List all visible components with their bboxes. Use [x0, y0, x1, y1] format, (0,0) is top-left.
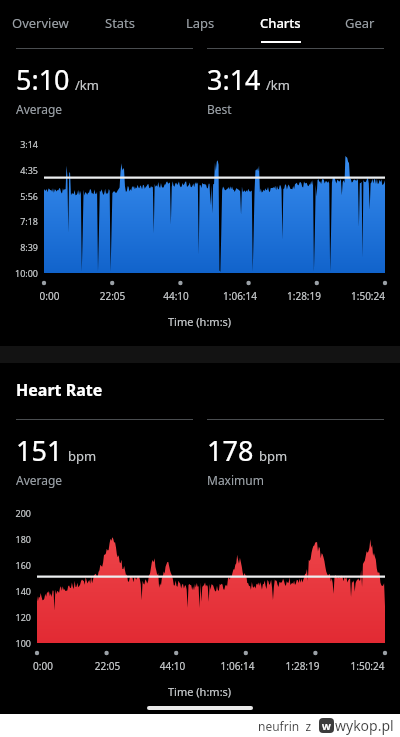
staticText: Gear	[345, 14, 375, 32]
staticText: neufrin z	[258, 718, 315, 734]
button[interactable]: Overview	[0, 0, 80, 48]
staticText: 4:35	[0, 164, 38, 176]
staticText: 44:10	[140, 659, 205, 673]
staticText: Charts	[260, 14, 301, 32]
staticText: Best	[207, 101, 232, 117]
staticText: 1:06:14	[205, 659, 270, 673]
button[interactable]: 151	[16, 419, 193, 488]
staticText: wykop.pl	[335, 716, 394, 735]
staticText: bpm	[68, 447, 97, 465]
staticText: 151	[16, 432, 63, 469]
staticText: 22:05	[75, 659, 140, 673]
staticText: Heart Rate	[16, 379, 103, 401]
button[interactable]: Gear	[320, 0, 400, 48]
staticText: Average	[16, 101, 63, 117]
staticText: 5:56	[0, 190, 38, 202]
button[interactable]: 178	[207, 419, 384, 488]
staticText: 0:00	[11, 659, 75, 673]
staticText: Time (h:m:s)	[168, 314, 232, 329]
staticText: 1:06:14	[208, 289, 272, 303]
staticText: 10:00	[0, 267, 38, 279]
staticText: /km	[75, 76, 99, 94]
staticText: Laps	[186, 14, 215, 32]
button[interactable]: 5:10	[16, 48, 193, 117]
staticText: 5:10	[16, 61, 70, 98]
staticText: 22:05	[81, 289, 144, 303]
staticText: Maximum	[207, 472, 264, 488]
staticText: 3:14	[0, 138, 38, 150]
staticText: /km	[266, 76, 290, 94]
staticText: 1:50:24	[336, 289, 400, 303]
staticText: 1:28:19	[272, 289, 336, 303]
staticText: 100	[0, 637, 31, 649]
staticText: 1:28:19	[270, 659, 335, 673]
staticText: 180	[0, 533, 31, 545]
staticText: 8:39	[0, 241, 38, 253]
staticText: Overview	[12, 14, 69, 32]
staticText: 178	[207, 432, 254, 469]
staticText: 160	[0, 559, 31, 571]
staticText: W	[322, 720, 331, 732]
staticText: Average	[16, 472, 63, 488]
staticText: 3:14	[207, 61, 261, 98]
button[interactable]: Laps	[160, 0, 240, 48]
staticText: 7:18	[0, 215, 38, 227]
button[interactable]: Charts	[240, 0, 320, 48]
button[interactable]: 3:14	[207, 48, 384, 117]
button[interactable]: Stats	[80, 0, 160, 48]
staticText: 120	[0, 611, 31, 623]
staticText: bpm	[259, 447, 288, 465]
staticText: 200	[0, 507, 31, 519]
staticText: Time (h:m:s)	[168, 684, 232, 699]
staticText: 140	[0, 585, 31, 597]
staticText: 44:10	[144, 289, 208, 303]
staticText: 0:00	[18, 289, 81, 303]
staticText: 1:50:24	[335, 659, 400, 673]
staticText: Stats	[105, 14, 136, 32]
